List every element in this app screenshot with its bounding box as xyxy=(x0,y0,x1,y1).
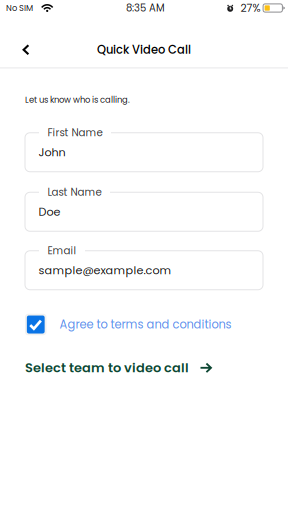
staticText: First Name xyxy=(47,126,102,140)
staticText: Doe xyxy=(38,204,60,220)
button[interactable]: Back xyxy=(12,36,40,64)
staticText: No SIM xyxy=(6,2,33,14)
button[interactable]: Agree to terms and conditions xyxy=(25,314,231,335)
staticText: 8:35 AM xyxy=(126,1,165,15)
staticText: Quick Video Call xyxy=(97,42,191,58)
staticText: Last Name xyxy=(47,185,101,199)
staticText: Agree to terms and conditions xyxy=(59,316,231,333)
button[interactable]: Select team to video call xyxy=(25,359,212,377)
staticText: Let us know who is calling. xyxy=(25,94,130,106)
staticText: Email xyxy=(47,244,76,258)
staticText: John xyxy=(38,144,65,160)
staticText: sample@example.com xyxy=(38,262,171,278)
staticText: 27% xyxy=(241,0,261,15)
staticText: Select team to video call xyxy=(25,359,189,377)
